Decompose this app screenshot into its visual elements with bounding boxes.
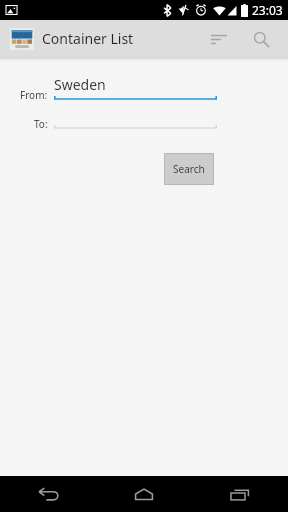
button[interactable]: Search (164, 153, 214, 185)
button[interactable] (54, 122, 217, 131)
button[interactable]: Recent apps (192, 476, 288, 512)
button[interactable]: App icon (10, 28, 34, 50)
button[interactable]: Sort (202, 22, 236, 56)
staticText: From: (20, 88, 48, 102)
staticText: Sweden (54, 75, 106, 94)
button[interactable]: Back (0, 476, 96, 512)
staticText: Search (173, 162, 205, 176)
staticText: Container List (42, 29, 134, 48)
button[interactable]: Search (244, 22, 278, 56)
button[interactable]: Sweden (54, 75, 217, 102)
staticText: 23:03 (252, 2, 283, 18)
button[interactable]: Home (96, 476, 192, 512)
staticText: To: (34, 117, 48, 131)
